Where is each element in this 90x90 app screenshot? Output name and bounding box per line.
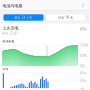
button[interactable]: 最近 24 小时 (3, 14, 43, 21)
staticText: 30分 (80, 79, 87, 82)
staticText: 0% (80, 65, 84, 68)
staticText: 最近 24 小时 (14, 16, 32, 19)
button[interactable]: 过去 10 天 (46, 14, 86, 21)
staticText: 0分 (80, 87, 85, 90)
staticText: 49% (79, 26, 86, 31)
button[interactable]: More options (80, 2, 86, 9)
staticText: 100% (80, 44, 88, 47)
staticText: 上次充电 (2, 26, 18, 31)
staticText: 昨天 22:41 (2, 32, 18, 35)
staticText: 活动 (2, 67, 8, 71)
staticText: 50% (80, 54, 86, 58)
staticText: 电池与电量 (2, 3, 22, 8)
staticText: 60分 (80, 71, 87, 75)
staticText: 电池电量 (2, 40, 14, 43)
staticText: 过去 10 天 (58, 16, 73, 19)
